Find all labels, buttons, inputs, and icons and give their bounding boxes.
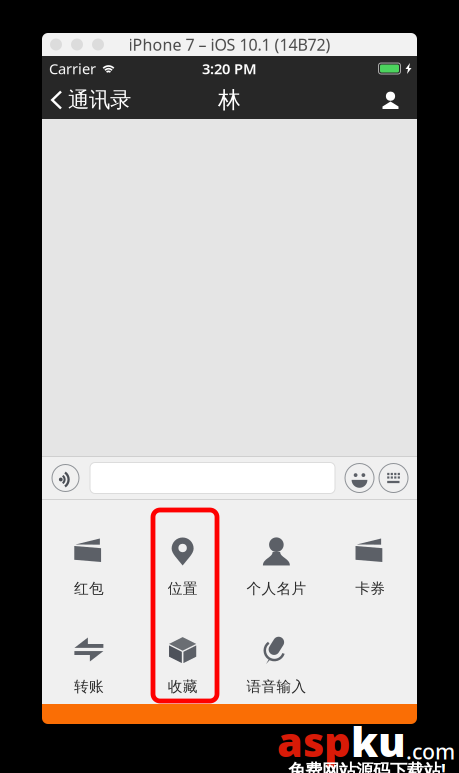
staticText: iPhone 7 – iOS 10.1 (14B72): [128, 34, 330, 55]
staticText: 通讯录: [68, 87, 131, 113]
staticText: Carrier: [49, 59, 96, 78]
staticText: 林: [218, 86, 241, 114]
staticText: 3:20 PM: [202, 59, 257, 78]
staticText: .com: [406, 737, 455, 765]
staticText: asp: [277, 714, 351, 768]
button[interactable]: 位置: [136, 500, 230, 598]
staticText: 转账: [74, 677, 104, 695]
button[interactable]: 收藏: [136, 598, 230, 696]
button[interactable]: 语音输入: [229, 598, 323, 696]
button[interactable]: 红包: [42, 500, 136, 598]
button[interactable]: 通讯录: [42, 80, 137, 120]
button[interactable]: 卡券: [323, 500, 417, 598]
staticText: 免费网站源码下载站!: [288, 758, 446, 773]
button[interactable]: Emoji: [345, 463, 374, 492]
staticText: 位置: [168, 579, 198, 597]
button[interactable]: Keyboard: [379, 463, 408, 492]
staticText: 语音输入: [246, 677, 306, 695]
staticText: 红包: [74, 579, 104, 597]
staticText: ku: [351, 714, 406, 768]
staticText: 个人名片: [246, 579, 306, 597]
staticText: 卡券: [355, 579, 385, 597]
button[interactable]: 个人名片: [229, 500, 323, 598]
button[interactable]: 转账: [42, 598, 136, 696]
staticText: 收藏: [168, 677, 198, 695]
button[interactable]: Contact info: [371, 81, 417, 119]
button[interactable]: Voice message: [52, 464, 79, 491]
